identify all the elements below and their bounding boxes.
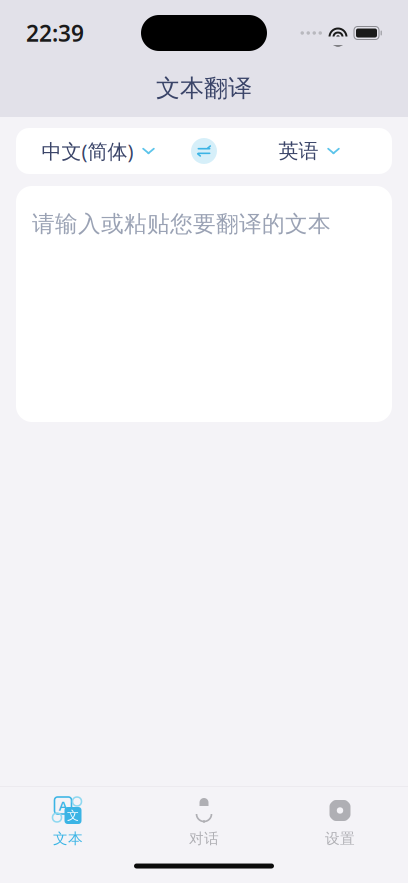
- button[interactable]: 中文(简体): [16, 126, 181, 176]
- button[interactable]: 请输入或粘贴您要翻译的文本: [16, 186, 392, 422]
- staticText: 中文(简体): [41, 138, 133, 164]
- staticText: 英语: [278, 139, 318, 163]
- button[interactable]: 设置: [272, 788, 408, 847]
- button[interactable]: 对话: [136, 788, 272, 847]
- staticText: A: [58, 797, 67, 814]
- button[interactable]: A: [0, 788, 136, 847]
- staticText: 设置: [325, 829, 355, 847]
- staticText: 请输入或粘贴您要翻译的文本: [32, 210, 331, 238]
- staticText: 文本翻译: [156, 73, 252, 103]
- button[interactable]: 英语: [227, 127, 392, 175]
- staticText: 文: [67, 808, 79, 823]
- button[interactable]: 交换语言: [181, 128, 227, 174]
- staticText: 对话: [189, 829, 219, 847]
- staticText: 文本: [53, 829, 83, 847]
- staticText: 22:39: [26, 18, 84, 48]
